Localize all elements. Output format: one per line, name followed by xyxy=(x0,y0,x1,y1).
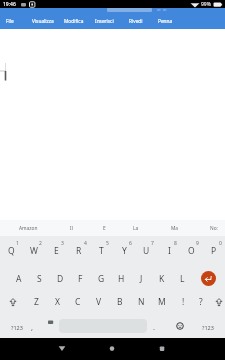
button[interactable]: O xyxy=(181,240,201,262)
button[interactable]: S xyxy=(29,268,49,290)
staticText: 0 xyxy=(219,240,222,247)
staticText: P xyxy=(211,245,217,257)
button[interactable] xyxy=(209,291,225,313)
staticText: V xyxy=(96,296,102,308)
button[interactable]: R xyxy=(69,240,89,262)
button[interactable]: La xyxy=(119,222,153,234)
staticText: Modifica xyxy=(64,18,84,25)
button[interactable]: G xyxy=(91,268,111,290)
staticText: Y xyxy=(122,245,127,257)
staticText: 8 xyxy=(174,240,177,247)
button[interactable]: Y xyxy=(114,240,134,262)
button[interactable]: ? xyxy=(191,291,211,313)
staticText: 9 xyxy=(196,240,199,247)
button[interactable] xyxy=(50,341,74,357)
staticText: A xyxy=(16,273,22,285)
staticText: La xyxy=(133,225,139,232)
button[interactable]: Z xyxy=(26,291,46,313)
button[interactable] xyxy=(100,341,124,357)
staticText: , xyxy=(31,322,34,332)
button[interactable]: X xyxy=(47,291,67,313)
button[interactable]: F xyxy=(70,268,90,290)
button[interactable]: M xyxy=(152,291,172,313)
staticText: G xyxy=(98,273,105,285)
button[interactable]: Il xyxy=(54,222,88,234)
staticText: T xyxy=(99,245,104,257)
staticText: N xyxy=(138,296,145,308)
staticText: Il xyxy=(70,225,73,232)
button[interactable]: N xyxy=(131,291,151,313)
button[interactable]: ! xyxy=(173,291,193,313)
button[interactable] xyxy=(170,316,190,336)
staticText: F xyxy=(78,273,83,285)
staticText: W xyxy=(30,245,38,257)
button[interactable]: I xyxy=(159,240,179,262)
staticText: M xyxy=(158,296,166,308)
button[interactable]: K xyxy=(152,268,172,290)
staticText: 5 xyxy=(106,240,109,247)
button[interactable]: A xyxy=(9,268,29,290)
button[interactable]: D xyxy=(50,268,70,290)
staticText: ?123 xyxy=(202,324,214,331)
button[interactable]: E xyxy=(46,240,66,262)
staticText: R xyxy=(76,245,82,257)
staticText: . xyxy=(153,322,156,332)
staticText: O xyxy=(188,245,195,257)
button[interactable]: C xyxy=(68,291,88,313)
staticText: No: xyxy=(210,225,218,232)
button[interactable]: U xyxy=(136,240,156,262)
button[interactable] xyxy=(150,341,174,357)
staticText: E xyxy=(103,225,106,232)
button[interactable]: No: xyxy=(197,222,225,234)
button[interactable]: V xyxy=(89,291,109,313)
staticText: File xyxy=(6,18,14,25)
staticText: 3 xyxy=(61,240,64,247)
staticText: Q xyxy=(8,245,15,257)
button[interactable]: ?123 xyxy=(5,316,29,338)
staticText: H xyxy=(118,273,125,285)
button[interactable]: Ma xyxy=(158,222,192,234)
staticText: Z xyxy=(34,296,39,308)
staticText: J xyxy=(140,273,143,285)
button[interactable]: , xyxy=(22,316,42,338)
staticText: C xyxy=(75,296,81,308)
button[interactable]: Modifica xyxy=(58,15,90,27)
button[interactable]: H xyxy=(111,268,131,290)
staticText: 7 xyxy=(151,240,154,247)
button[interactable]: Penna xyxy=(149,15,181,27)
staticText: E xyxy=(54,245,59,257)
button[interactable]: W xyxy=(24,240,44,262)
staticText: Penna xyxy=(158,18,173,25)
button[interactable]: B xyxy=(110,291,130,313)
staticText: Rivedi xyxy=(129,18,143,25)
staticText: Inserisci xyxy=(95,18,114,25)
staticText: 1 xyxy=(16,240,19,247)
button[interactable]: T xyxy=(91,240,111,262)
staticText: ? xyxy=(199,296,203,308)
button[interactable]: Visualizza xyxy=(27,15,59,27)
button[interactable]: E xyxy=(87,222,121,234)
staticText: B xyxy=(117,296,123,308)
staticText: Visualizza xyxy=(32,18,54,25)
button[interactable]: File xyxy=(0,15,26,27)
button[interactable]: L xyxy=(172,268,192,290)
staticText: U xyxy=(143,245,150,257)
staticText: Amazon xyxy=(19,225,38,232)
button[interactable]: . xyxy=(144,316,164,338)
button[interactable]: P xyxy=(204,240,224,262)
staticText: 4 xyxy=(84,240,87,247)
button[interactable]: Amazon xyxy=(11,222,45,234)
button[interactable]: Rivedi xyxy=(120,15,152,27)
staticText: 99% xyxy=(201,1,211,8)
button[interactable]: Inserisci xyxy=(88,15,120,27)
staticText: ?123 xyxy=(11,324,23,331)
staticText: X xyxy=(55,296,60,308)
button[interactable]: Q xyxy=(1,240,21,262)
button[interactable]: J xyxy=(131,268,151,290)
button[interactable] xyxy=(201,271,216,286)
button[interactable] xyxy=(3,291,23,313)
staticText: ! xyxy=(182,296,185,308)
button[interactable]: ?123 xyxy=(196,316,220,338)
